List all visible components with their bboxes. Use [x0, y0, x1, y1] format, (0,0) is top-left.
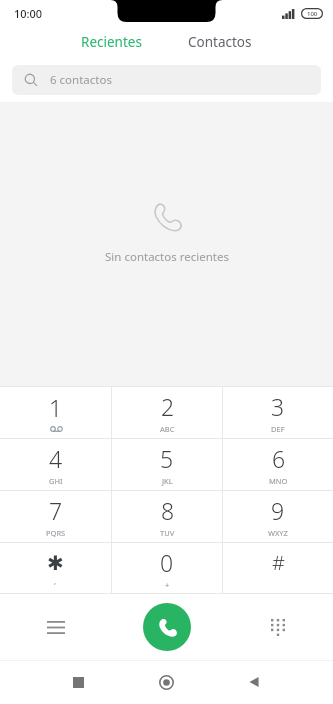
staticText: 2	[161, 391, 175, 422]
button[interactable]: Recientes	[69, 29, 154, 55]
button[interactable]: 4	[0, 438, 111, 490]
staticText: 6	[272, 443, 286, 474]
staticText: 3	[271, 391, 285, 422]
staticText: ABC	[160, 424, 175, 434]
staticText: GHI	[49, 476, 63, 486]
staticText: 7	[49, 495, 63, 526]
button[interactable]: 5	[112, 438, 222, 490]
button[interactable]: 7	[0, 490, 111, 542]
button[interactable]: Dialpad	[222, 594, 333, 660]
staticText: 4	[49, 443, 63, 474]
button[interactable]: 3	[223, 386, 333, 438]
staticText: Contactos	[188, 33, 252, 51]
staticText: PQRS	[46, 528, 66, 538]
button[interactable]: 8	[112, 490, 222, 542]
button[interactable]: 9	[223, 490, 333, 542]
staticText: #	[272, 549, 285, 576]
button[interactable]: ✱	[0, 542, 111, 594]
staticText: 8	[161, 495, 175, 526]
staticText: 9	[271, 495, 285, 526]
button[interactable]: 6 contactos	[12, 65, 321, 95]
button[interactable]: 2	[112, 386, 222, 438]
staticText: 0	[160, 547, 174, 578]
staticText: Recientes	[81, 33, 142, 51]
staticText: ✱	[47, 551, 64, 574]
button[interactable]: Menu	[0, 594, 111, 660]
button[interactable]: Call	[143, 603, 191, 651]
button[interactable]: Contactos	[176, 29, 264, 55]
staticText: 1	[49, 392, 63, 423]
staticText: JKL	[162, 476, 173, 486]
staticText: ,	[54, 576, 57, 586]
staticText: TUV	[160, 528, 175, 538]
staticText: 100	[307, 10, 318, 18]
staticText: WXYZ	[268, 528, 288, 538]
button[interactable]: Recents	[58, 662, 98, 702]
button[interactable]: Back	[234, 662, 274, 702]
staticText: 10:00	[14, 6, 43, 21]
button[interactable]: 1	[0, 386, 111, 438]
staticText: Sin contactos recientes	[105, 249, 229, 265]
button[interactable]: #	[223, 542, 333, 594]
staticText: +	[165, 580, 170, 590]
staticText: MNO	[269, 476, 288, 486]
staticText: 6 contactos	[50, 72, 112, 88]
staticText: 5	[160, 443, 174, 474]
staticText: DEF	[271, 424, 285, 434]
button[interactable]: 6	[223, 438, 333, 490]
button[interactable]: 0	[112, 542, 222, 594]
button[interactable]: Home	[146, 662, 186, 702]
